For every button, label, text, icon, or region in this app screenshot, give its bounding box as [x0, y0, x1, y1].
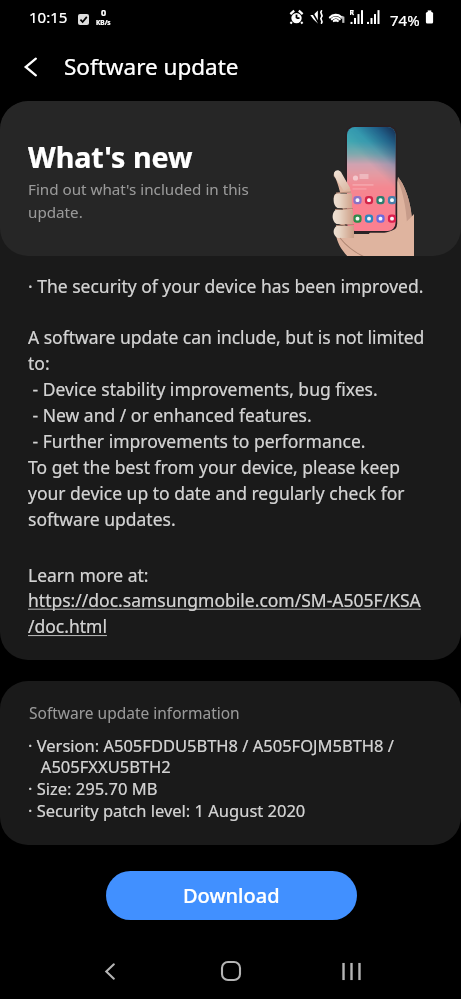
staticText: Find out what's included in this update.: [28, 179, 249, 223]
button[interactable]: Recent apps: [329, 949, 373, 993]
staticText: 74%: [390, 10, 420, 30]
button[interactable]: Navigate up: [14, 50, 47, 83]
button[interactable]: Download: [106, 871, 357, 920]
button[interactable]: Back: [88, 949, 132, 993]
staticText: Software update: [64, 51, 239, 82]
staticText: · The security of your device has been i…: [28, 274, 425, 532]
staticText: Download: [183, 882, 280, 909]
staticText: Learn more at: https://doc.samsungmobile…: [28, 563, 421, 639]
staticText: Software update information: [29, 702, 240, 723]
staticText: What's new: [28, 137, 193, 176]
staticText: · Version: A505FDDU5BTH8 / A505FOJM5BTH8…: [28, 734, 394, 822]
staticText: 0: [101, 6, 107, 18]
staticText: 10:15: [29, 7, 68, 27]
button[interactable]: Home: [209, 949, 253, 993]
staticText: KB/s: [96, 18, 111, 27]
